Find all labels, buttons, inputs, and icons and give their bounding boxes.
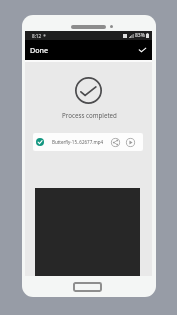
button[interactable]: Butterfly-15..62677.mp4 xyxy=(33,133,143,151)
button[interactable]: Play xyxy=(124,136,136,148)
button[interactable]: Share xyxy=(109,136,121,148)
staticText: Done xyxy=(30,45,49,55)
button[interactable]: Done xyxy=(25,41,53,59)
button[interactable]: Confirm xyxy=(135,40,152,60)
staticText: 83% xyxy=(135,32,145,39)
staticText: 8:12 xyxy=(32,33,42,39)
staticText: Process completed xyxy=(62,111,117,119)
staticText: Butterfly-15..62677.mp4 xyxy=(52,139,103,145)
